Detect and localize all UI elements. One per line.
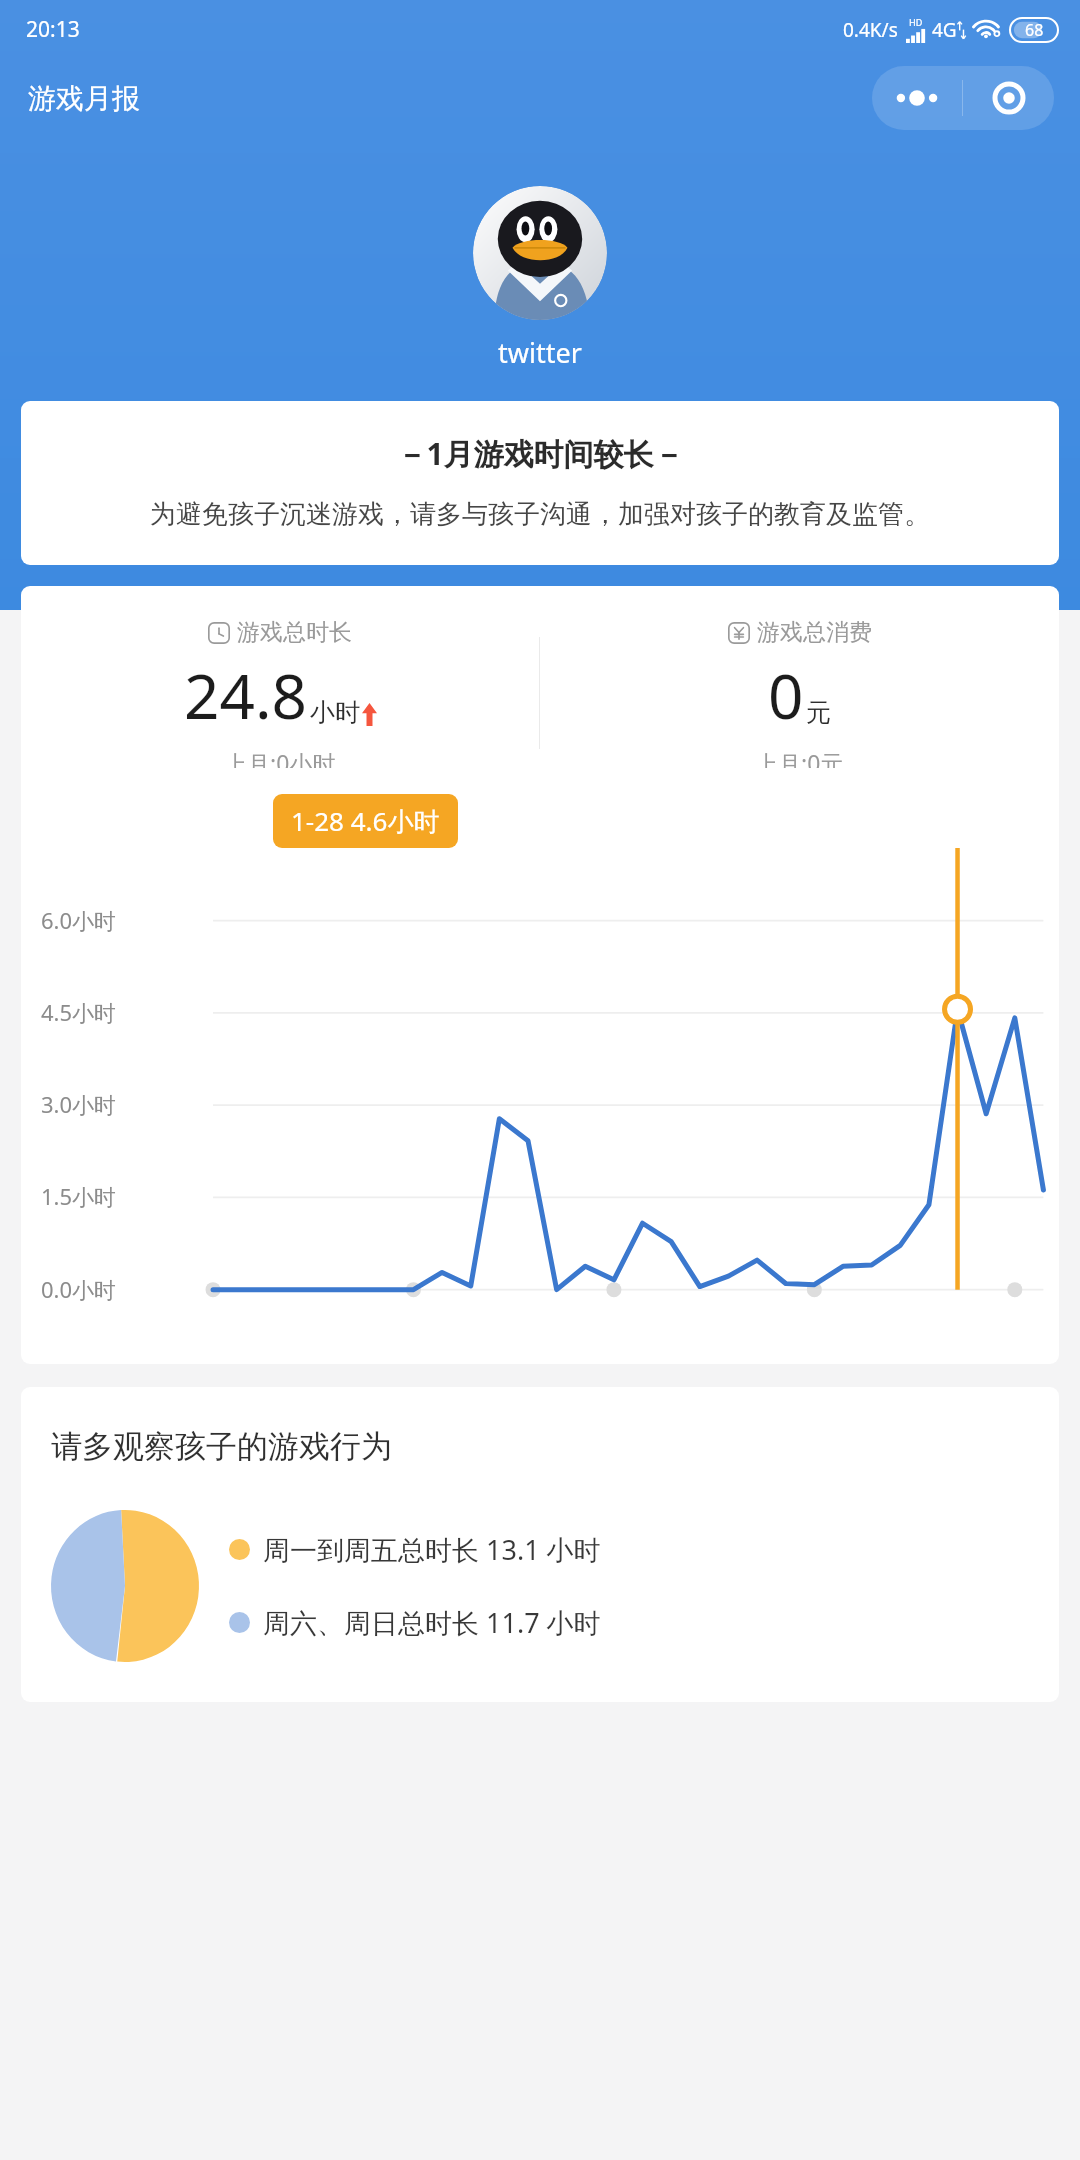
- staticText: 1.5小时: [41, 1181, 117, 1211]
- button[interactable]: More options: [872, 66, 962, 130]
- button[interactable]: 周一到周五总时长 13.1 小时: [229, 1531, 601, 1568]
- staticText: 1-28 4.6小时: [291, 803, 440, 839]
- button[interactable]: 游戏总消费: [540, 618, 1059, 768]
- staticText: 4.5小时: [41, 997, 117, 1027]
- staticText: 0: [768, 653, 804, 737]
- button[interactable]: 周六、周日总时长 11.7 小时: [229, 1604, 601, 1641]
- staticText: 游戏总消费: [757, 618, 872, 647]
- staticText: 4G: [932, 17, 957, 43]
- button[interactable]: －1月游戏时间较长－: [21, 401, 1059, 565]
- staticText: 上月:0小时: [224, 747, 336, 768]
- staticText: 20:13: [26, 15, 80, 44]
- button[interactable]: Close mini program: [963, 66, 1054, 130]
- staticText: twitter: [498, 334, 582, 371]
- button[interactable]: 1-28 4.6小时: [273, 794, 458, 848]
- button[interactable]: 游戏总时长: [21, 618, 539, 768]
- staticText: 周一到周五总时长 13.1 小时: [263, 1531, 601, 1568]
- staticText: 小时: [310, 697, 360, 728]
- staticText: 6.0小时: [41, 905, 117, 935]
- staticText: 游戏总时长: [237, 618, 352, 647]
- staticText: 元: [806, 697, 831, 728]
- staticText: 0.0小时: [41, 1274, 117, 1304]
- staticText: 游戏月报: [28, 81, 140, 116]
- button[interactable]: 请多观察孩子的游戏行为: [21, 1387, 1059, 1702]
- staticText: 上月:0元: [755, 747, 844, 768]
- staticText: 为避免孩子沉迷游戏，请多与孩子沟通，加强对孩子的教育及监管。: [150, 498, 930, 531]
- staticText: 周六、周日总时长 11.7 小时: [263, 1604, 601, 1641]
- staticText: 请多观察孩子的游戏行为: [51, 1427, 392, 1466]
- staticText: 0.4K/s: [843, 17, 898, 43]
- staticText: －1月游戏时间较长－: [396, 433, 684, 474]
- staticText: 3.0小时: [41, 1089, 117, 1119]
- staticText: 24.8: [184, 653, 308, 737]
- staticText: 68: [1025, 19, 1044, 41]
- staticText: HD: [909, 16, 923, 28]
